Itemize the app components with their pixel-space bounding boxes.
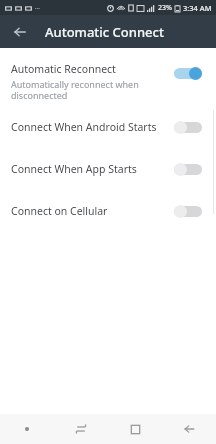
staticText: ··· <box>35 4 40 12</box>
staticText: 23% <box>158 3 172 13</box>
staticText: Automatic Connect <box>45 23 164 41</box>
button[interactable]: Off <box>171 116 205 138</box>
button[interactable]: Connect on Cellular <box>0 190 216 232</box>
button[interactable]: On <box>171 64 205 98</box>
button[interactable]: Off <box>171 158 205 180</box>
staticText: Connect When App Starts <box>11 162 137 176</box>
staticText: Connect When Android Starts <box>11 120 157 134</box>
staticText: Automatic Reconnect <box>11 62 116 76</box>
button[interactable]: Split screen <box>54 414 108 444</box>
staticText: Connect on Cellular <box>11 204 108 218</box>
button[interactable]: Menu <box>0 414 54 444</box>
staticText: Automatically reconnect when disconnecte… <box>11 78 163 101</box>
button[interactable]: Back <box>3 15 36 48</box>
button[interactable]: Back <box>162 414 216 444</box>
button[interactable]: Connect When Android Starts <box>0 106 216 148</box>
button[interactable]: Connect When App Starts <box>0 148 216 190</box>
staticText: 3:34 AM <box>183 3 212 13</box>
button[interactable]: Automatic Reconnect <box>0 56 216 106</box>
button[interactable]: Off <box>171 200 205 222</box>
button[interactable]: Home <box>108 414 162 444</box>
